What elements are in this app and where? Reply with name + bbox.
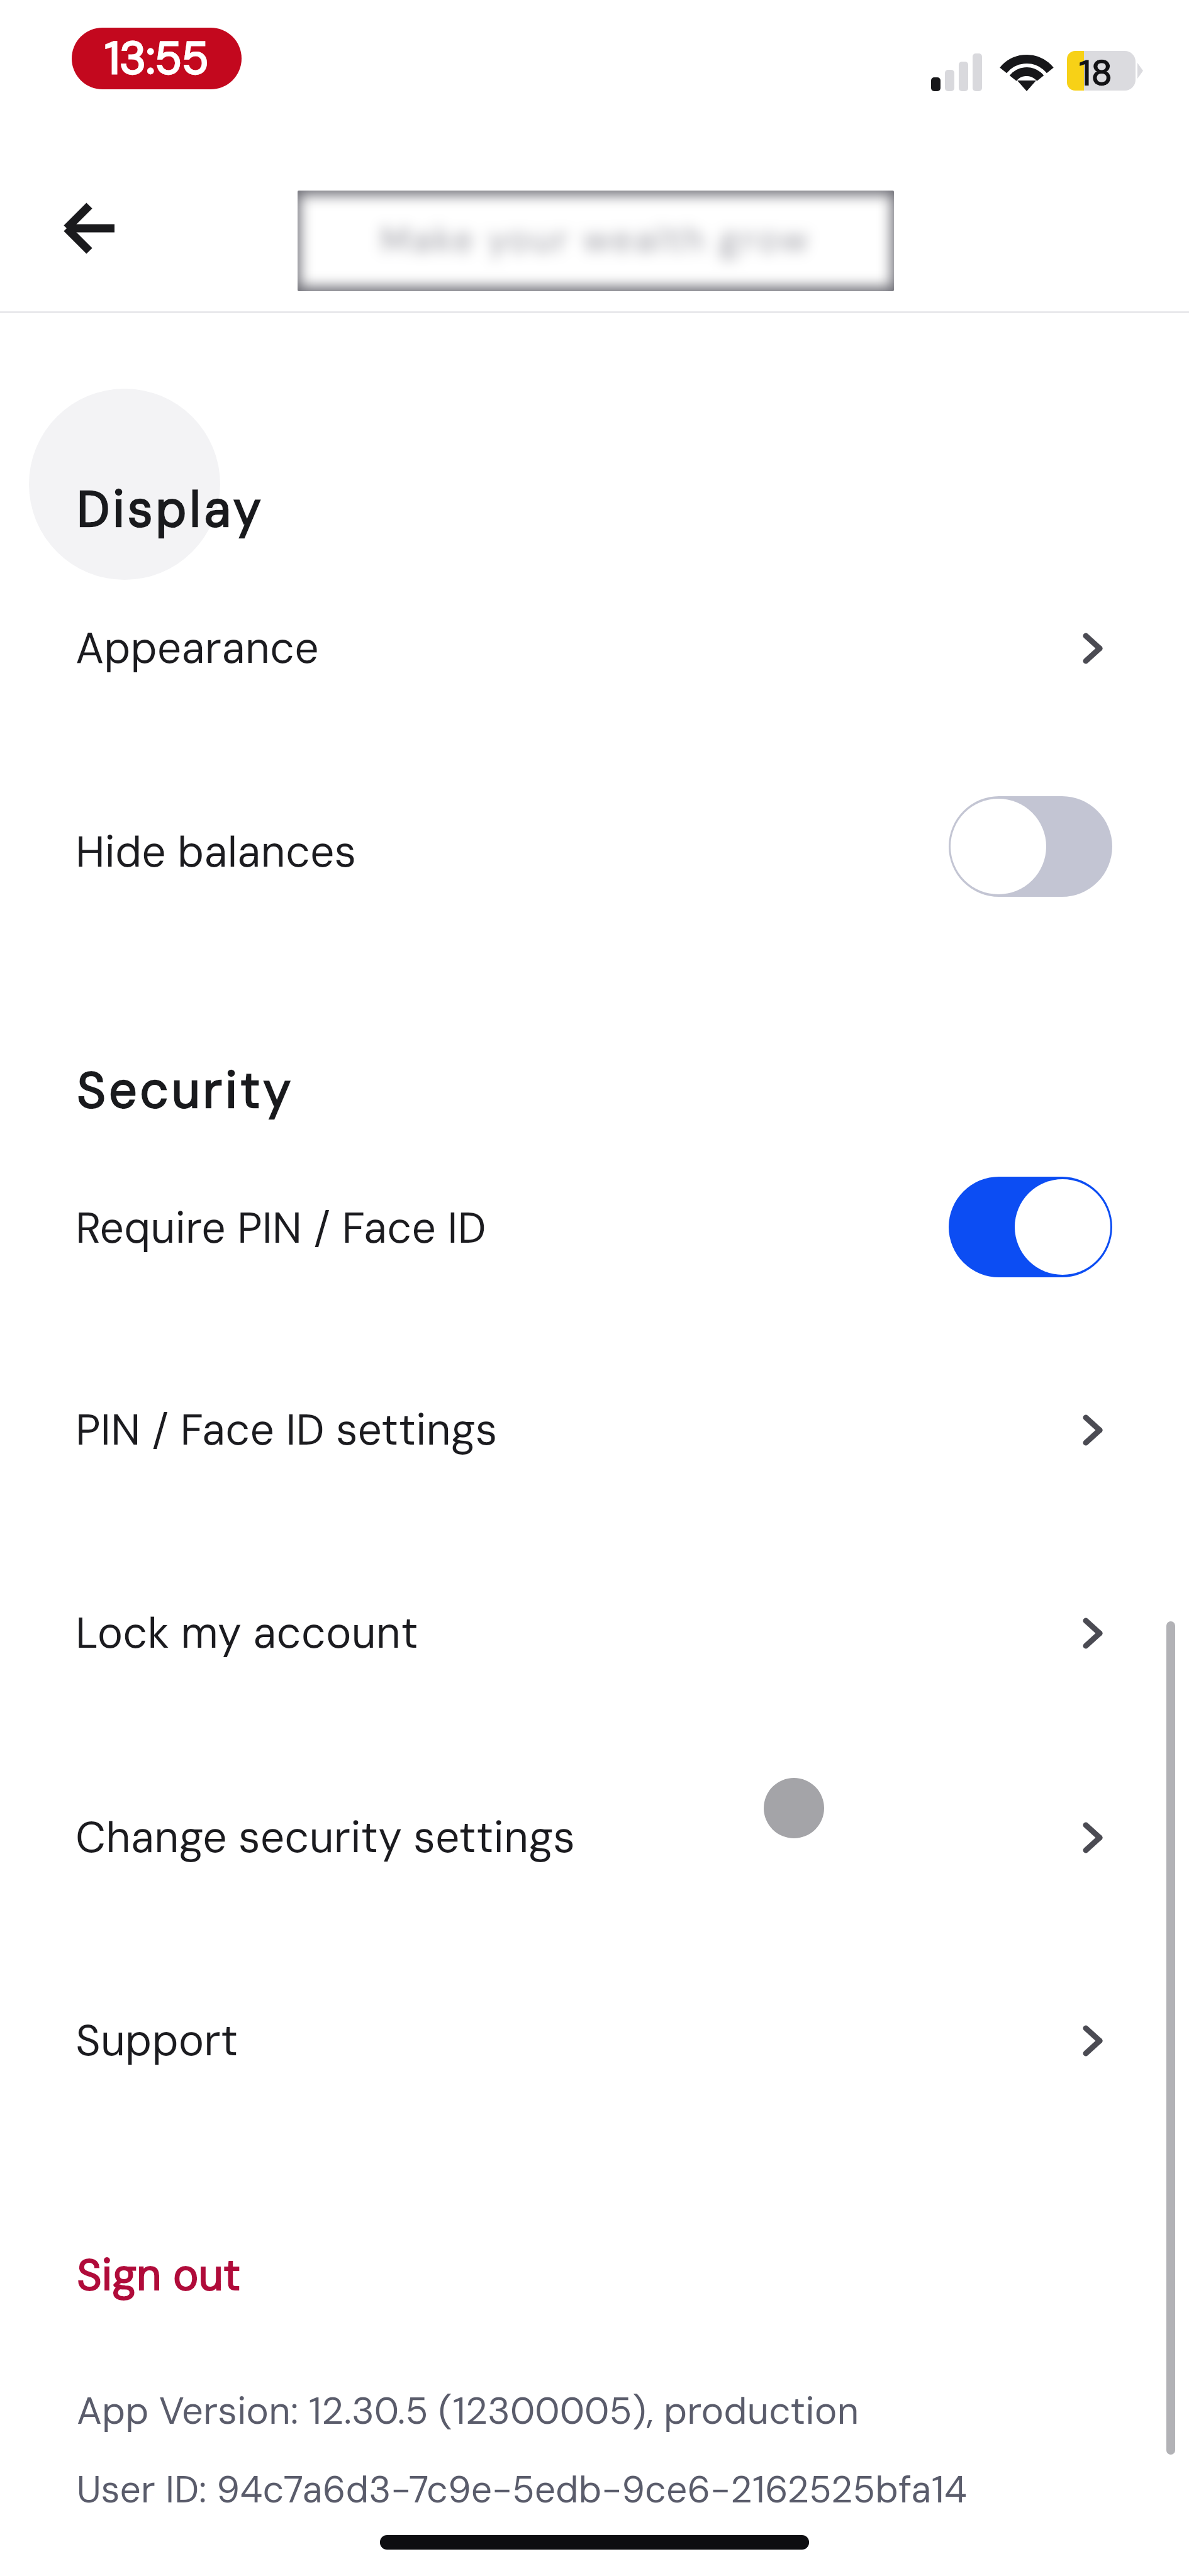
staticText: Appearance [75, 621, 319, 677]
button[interactable]: PIN / Face ID settings [0, 1370, 1189, 1496]
button[interactable]: Sign out [39, 2225, 284, 2326]
button[interactable]: Require PIN / Face ID [0, 1167, 1189, 1299]
button[interactable]: Lock my account [0, 1573, 1189, 1699]
staticText: 13:55 [104, 29, 209, 88]
staticText: Security [77, 1058, 294, 1123]
staticText: Hide balances [75, 824, 357, 880]
staticText: 18 [1079, 50, 1112, 89]
button[interactable]: Change security settings [0, 1777, 1189, 1903]
staticText: Display [77, 477, 264, 542]
button[interactable]: Hide balances [0, 791, 1189, 923]
staticText: Support [75, 2013, 238, 2069]
staticText: Lock my account [75, 1606, 418, 1662]
button[interactable]: Support [0, 1980, 1189, 2106]
staticText: PIN / Face ID settings [75, 1402, 498, 1458]
button[interactable]: Appearance [0, 588, 1189, 714]
staticText: Require PIN / Face ID [75, 1201, 486, 1257]
staticText: Make your wealth grow [381, 216, 811, 262]
staticText: App Version: 12.30.5 (12300005), product… [77, 2386, 859, 2435]
staticText: Sign out [77, 2248, 241, 2304]
staticText: User ID: 94c7a6d3-7c9e-5edb-9ce6-2162525… [77, 2465, 967, 2514]
staticText: Change security settings [75, 1810, 575, 1866]
button[interactable]: Back [39, 178, 140, 279]
